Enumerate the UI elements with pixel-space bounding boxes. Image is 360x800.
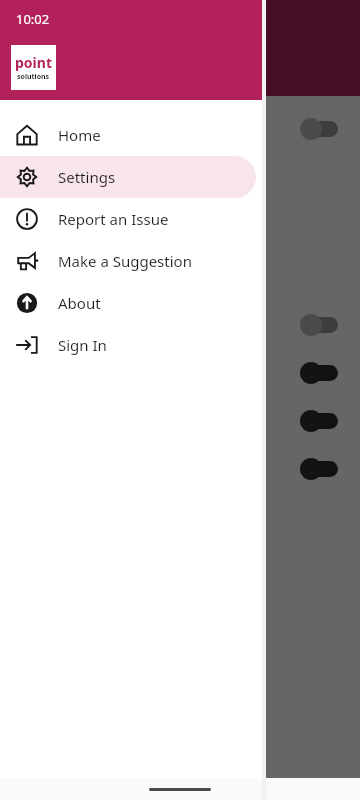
button[interactable]: Make a Suggestion (0, 240, 256, 282)
button[interactable]: About (0, 282, 256, 324)
button[interactable]: Sign In (0, 324, 256, 366)
staticText: Keep screen awake while using this devic… (24, 118, 272, 156)
staticText: solutions (17, 72, 50, 82)
staticText: About (58, 293, 101, 313)
staticText: Report an Issue (58, 209, 169, 229)
staticText: 10:02 (16, 10, 50, 28)
staticText: Make a Suggestion (58, 251, 192, 271)
staticText: Settings (58, 167, 116, 187)
button[interactable]: Home (0, 114, 256, 156)
staticText: Sign In (58, 335, 107, 355)
staticText: point (15, 53, 52, 72)
button[interactable]: Settings (0, 156, 256, 198)
staticText: Home (58, 125, 101, 145)
button[interactable]: Report an Issue (0, 198, 256, 240)
